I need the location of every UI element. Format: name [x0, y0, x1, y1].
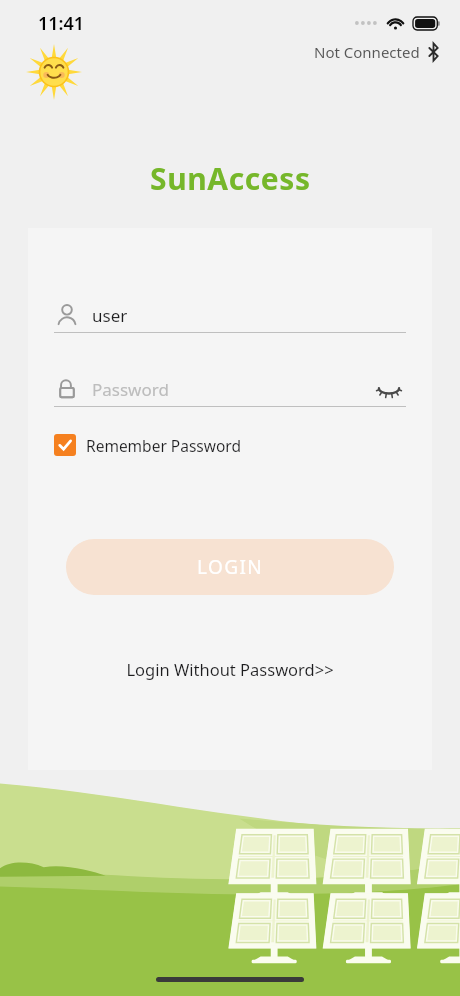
button[interactable]: user	[54, 296, 406, 334]
button[interactable]: Show password	[372, 372, 406, 406]
staticText: Password	[92, 378, 372, 401]
button[interactable]: Password	[54, 370, 406, 408]
button[interactable]: Login Without Password>>	[126, 658, 334, 680]
staticText: user	[92, 304, 128, 327]
staticText: Remember Password	[86, 435, 241, 456]
staticText: 11:41	[38, 11, 85, 36]
staticText: LOGIN	[197, 554, 264, 580]
staticText: Login Without Password>>	[126, 658, 334, 680]
staticText: Not Connected	[314, 42, 420, 62]
staticText: SunAccess	[150, 158, 311, 199]
button[interactable]: LOGIN	[66, 539, 394, 595]
button[interactable]: Remember Password	[54, 430, 241, 460]
